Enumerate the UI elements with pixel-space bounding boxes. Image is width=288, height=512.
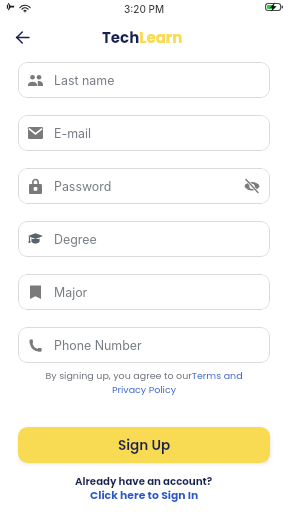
button[interactable]: E-mail <box>18 115 270 151</box>
staticText: Sign Up <box>118 436 171 455</box>
button[interactable]: Phone Number <box>18 327 270 363</box>
staticText: 3:20 PM <box>124 3 165 15</box>
button[interactable]: Sign Up <box>18 427 270 463</box>
staticText: Degree <box>54 232 97 247</box>
staticText: Last name <box>54 73 115 88</box>
button[interactable]: Last name <box>18 62 270 98</box>
button[interactable]: Click here to Sign In <box>84 486 205 505</box>
staticText: Click here to Sign In <box>90 488 199 503</box>
staticText: Already have an account? <box>75 474 213 488</box>
button[interactable]: Back <box>8 23 36 51</box>
staticText: By signing up, you agree to ourTerms and… <box>40 369 248 397</box>
staticText: E-mail <box>54 126 91 141</box>
button[interactable]: Password <box>18 168 270 204</box>
staticText: Major <box>54 285 88 300</box>
staticText: Phone Number <box>54 338 142 353</box>
staticText: Password <box>54 179 112 194</box>
button[interactable]: Major <box>18 274 270 310</box>
staticText: TechLearn <box>102 27 183 48</box>
button[interactable]: Degree <box>18 221 270 257</box>
other: Show password <box>244 179 260 193</box>
